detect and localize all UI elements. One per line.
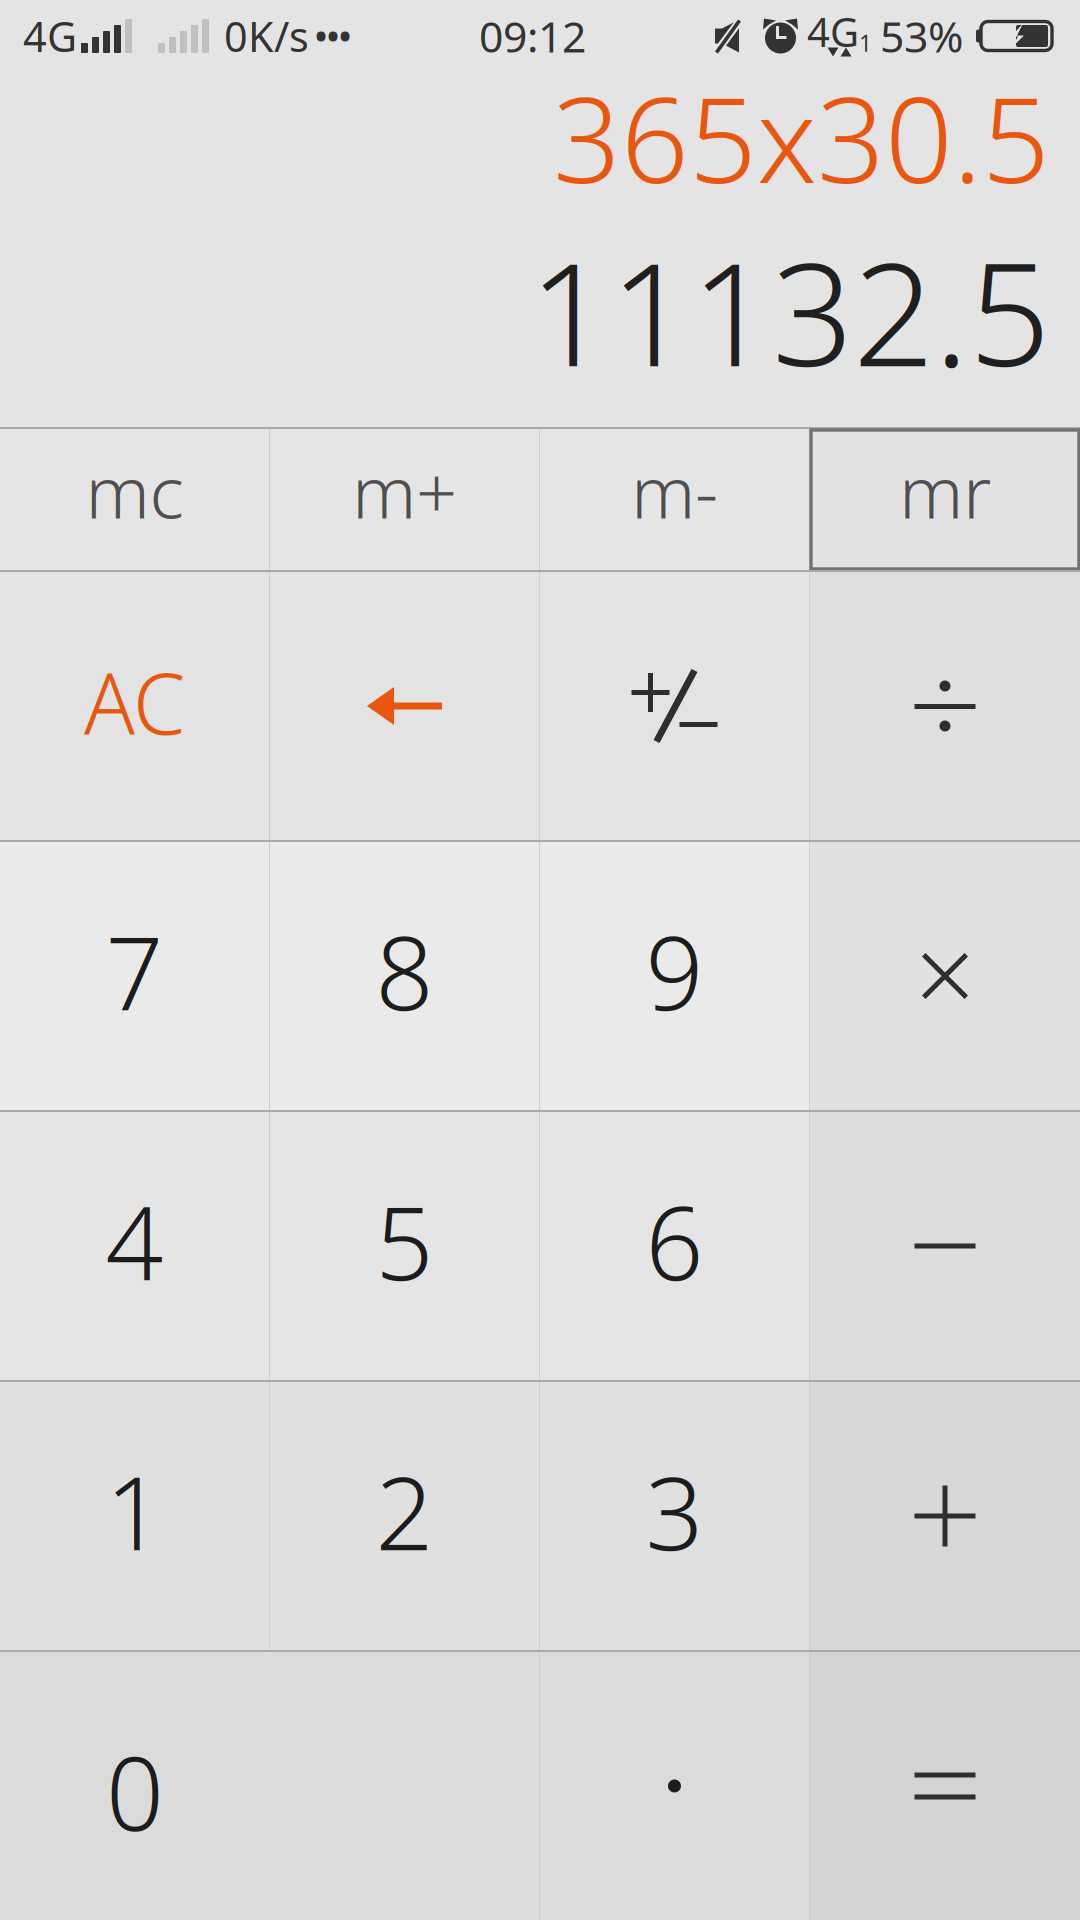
staticText: 8 — [375, 904, 433, 1038]
button[interactable]: 4 — [0, 1112, 269, 1380]
staticText: 7 — [105, 904, 163, 1038]
button[interactable]: Multiply — [810, 842, 1080, 1110]
staticText: 11132.5 — [529, 216, 1050, 406]
staticText: mc — [85, 443, 183, 538]
button[interactable]: 3 — [540, 1382, 809, 1650]
staticText: ••• — [315, 15, 351, 57]
staticText: 4G — [807, 5, 859, 58]
button[interactable]: 2 — [270, 1382, 539, 1650]
staticText: 5 — [375, 1174, 433, 1308]
button[interactable]: 8 — [270, 842, 539, 1110]
button[interactable]: Equals — [810, 1652, 1080, 1920]
staticText: mr — [899, 443, 991, 538]
staticText: 09:12 — [479, 8, 586, 64]
staticText: 2 — [375, 1444, 433, 1578]
button[interactable]: Backspace — [270, 572, 539, 840]
button[interactable]: Subtract — [810, 1112, 1080, 1380]
staticText: 365x30.5 — [553, 58, 1050, 216]
staticText: 1 — [859, 28, 872, 58]
button[interactable]: mc — [0, 429, 269, 570]
button[interactable]: AC — [0, 572, 269, 840]
staticText: 53% — [880, 8, 963, 64]
button[interactable]: Decimal point — [540, 1652, 809, 1920]
button[interactable]: m+ — [270, 429, 539, 570]
button[interactable]: Divide — [810, 572, 1080, 840]
staticText: 0 — [106, 1724, 164, 1859]
button[interactable]: Plus minus — [540, 572, 809, 840]
button[interactable]: mr — [810, 429, 1080, 570]
button[interactable]: 6 — [540, 1112, 809, 1380]
staticText: 4G — [23, 9, 77, 63]
button[interactable]: 0 — [0, 1652, 539, 1920]
button[interactable]: 1 — [0, 1382, 269, 1650]
staticText: m+ — [352, 443, 457, 538]
staticText: 6 — [645, 1174, 703, 1308]
button[interactable]: m- — [540, 429, 809, 570]
button[interactable]: 9 — [540, 842, 809, 1110]
staticText: 0K/s — [224, 9, 309, 63]
button[interactable]: 5 — [270, 1112, 539, 1380]
staticText: 9 — [645, 904, 703, 1038]
button[interactable]: Add — [810, 1382, 1080, 1650]
staticText: m- — [631, 443, 718, 538]
staticText: 1 — [105, 1444, 163, 1578]
staticText: AC — [84, 646, 185, 758]
staticText: 4 — [105, 1174, 163, 1308]
button[interactable]: 7 — [0, 842, 269, 1110]
staticText: 3 — [645, 1444, 703, 1578]
